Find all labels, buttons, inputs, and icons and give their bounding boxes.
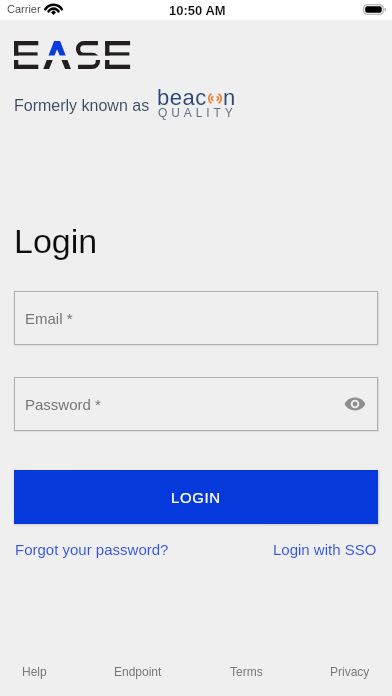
button[interactable]: Help: [22, 665, 47, 678]
button[interactable]: Password *: [14, 377, 378, 431]
staticText: Login: [14, 222, 98, 260]
staticText: Password *: [25, 396, 101, 413]
staticText: 10:50 AM: [169, 3, 226, 18]
button[interactable]: Forgot your password?: [15, 541, 169, 558]
staticText: Carrier: [7, 3, 41, 15]
button[interactable]: Login with SSO: [273, 541, 377, 558]
button[interactable]: Endpoint: [114, 665, 162, 678]
staticText: Formerly known as: [14, 97, 150, 115]
staticText: QUALITY: [158, 106, 237, 119]
button[interactable]: Show password: [342, 391, 368, 417]
staticText: beac: [157, 85, 207, 110]
staticText: Email *: [25, 310, 73, 327]
staticText: n: [223, 85, 236, 110]
staticText: LOGIN: [171, 489, 221, 506]
button[interactable]: Privacy: [330, 665, 370, 678]
button[interactable]: LOGIN: [14, 470, 378, 524]
button[interactable]: Terms: [230, 665, 263, 678]
button[interactable]: Email *: [14, 291, 378, 345]
